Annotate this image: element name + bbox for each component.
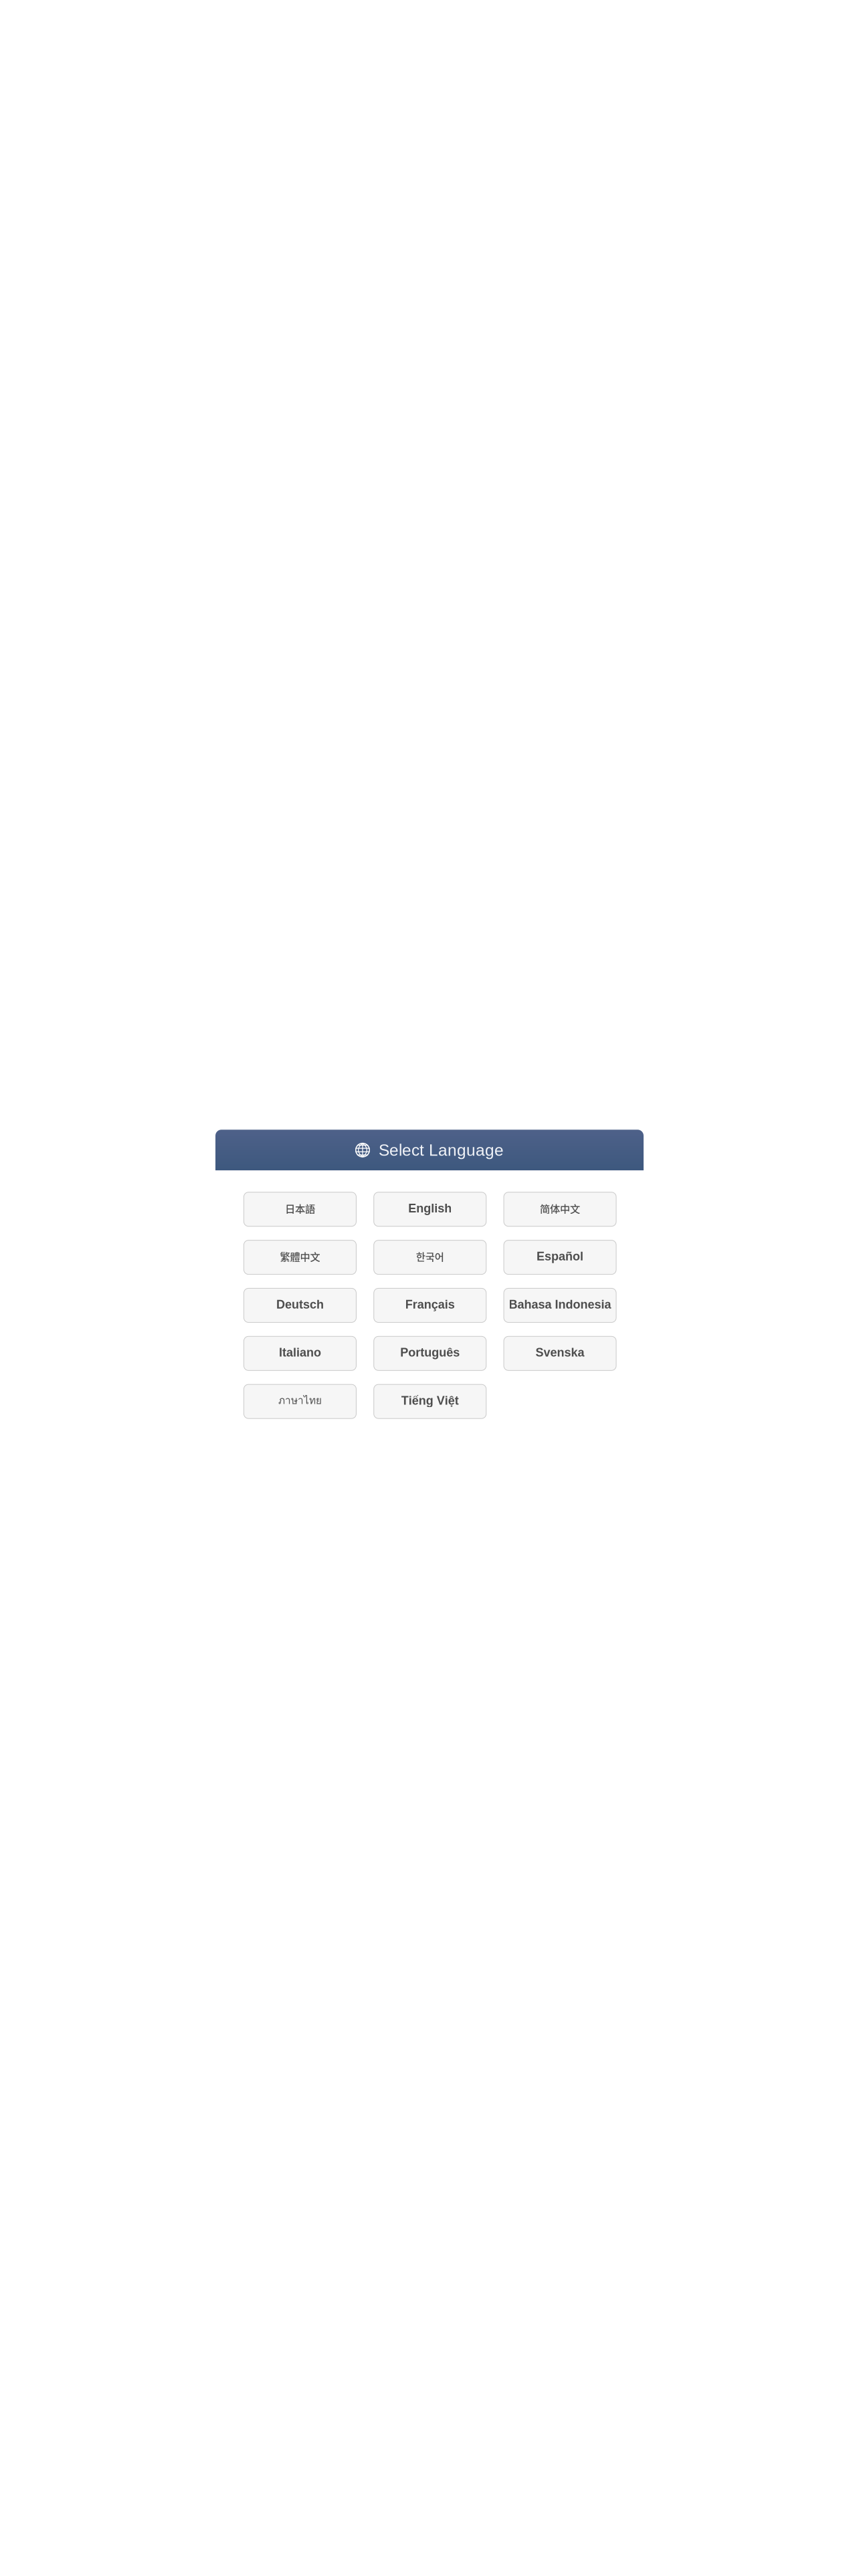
staticText: Bahasa Indonesia [509, 1298, 611, 1311]
button[interactable]: Svenska [504, 1336, 616, 1370]
staticText: Español [537, 1250, 583, 1263]
button[interactable]: Italiano [244, 1336, 356, 1370]
button[interactable]: Português [374, 1336, 486, 1370]
staticText: Português [400, 1346, 460, 1359]
staticText: 简体中文 [540, 1201, 580, 1216]
staticText: 한국어 [416, 1249, 444, 1264]
staticText: Français [405, 1298, 455, 1311]
button[interactable]: 日本語 [244, 1192, 356, 1226]
button[interactable]: Deutsch [244, 1288, 356, 1322]
staticText: Select Language [379, 1141, 504, 1159]
button[interactable]: English [374, 1192, 486, 1226]
staticText: ภาษาไทย [278, 1392, 322, 1409]
staticText: Svenska [536, 1346, 584, 1359]
button[interactable]: Español [504, 1240, 616, 1274]
button[interactable]: 简体中文 [504, 1192, 616, 1226]
button[interactable]: ภาษาไทย [244, 1384, 356, 1419]
button[interactable]: Français [374, 1288, 486, 1322]
staticText: Tiếng Việt [401, 1394, 459, 1407]
staticText: 日本語 [285, 1201, 315, 1216]
button[interactable]: Tiếng Việt [374, 1384, 486, 1419]
staticText: 繁體中文 [280, 1249, 320, 1264]
staticText: Italiano [279, 1346, 321, 1359]
button[interactable]: 繁體中文 [244, 1240, 356, 1274]
button[interactable]: Bahasa Indonesia [504, 1288, 616, 1322]
button[interactable]: 한국어 [374, 1240, 486, 1274]
staticText: English [408, 1202, 452, 1215]
staticText: Deutsch [276, 1298, 324, 1311]
